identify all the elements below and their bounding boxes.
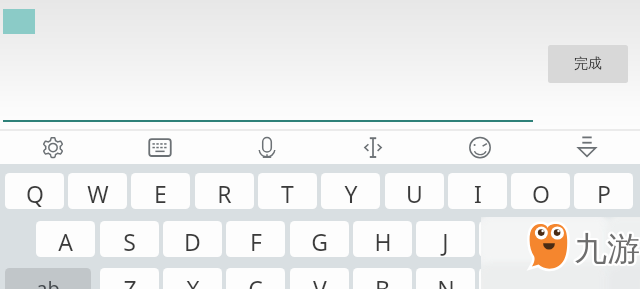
- button[interactable]: Keyboard layout: [134, 129, 186, 164]
- staticText: H: [374, 226, 392, 257]
- button[interactable]: J: [416, 221, 475, 257]
- staticText: 九游: [575, 229, 640, 271]
- button[interactable]: Emoji: [454, 129, 506, 164]
- button[interactable]: E: [131, 173, 190, 209]
- staticText: P: [597, 178, 611, 209]
- button[interactable]: L: [543, 221, 602, 257]
- staticText: O: [532, 178, 550, 209]
- button[interactable]: Move cursor: [347, 129, 399, 164]
- staticText: J: [442, 226, 449, 257]
- button[interactable]: Text input field: [3, 4, 533, 123]
- staticText: D: [184, 226, 201, 257]
- staticText: B: [375, 273, 390, 289]
- staticText: 九游: [575, 228, 640, 270]
- staticText: ab: [36, 275, 60, 289]
- staticText: L: [566, 226, 579, 257]
- button[interactable]: A: [36, 221, 95, 257]
- staticText: 九游: [572, 229, 638, 271]
- staticText: V: [313, 273, 327, 289]
- button[interactable]: ab: [5, 268, 91, 289]
- staticText: Y: [344, 178, 358, 209]
- button[interactable]: 完成: [548, 45, 628, 83]
- button[interactable]: M: [479, 268, 538, 289]
- button[interactable]: Voice input: [241, 129, 293, 164]
- staticText: N: [437, 273, 455, 289]
- staticText: 九游: [576, 227, 640, 269]
- button[interactable]: P: [574, 173, 633, 209]
- button[interactable]: F: [226, 221, 285, 257]
- staticText: X: [186, 273, 200, 289]
- staticText: 九游: [574, 228, 640, 270]
- button[interactable]: Settings: [27, 129, 79, 164]
- staticText: 九游: [575, 227, 640, 269]
- staticText: R: [217, 178, 232, 209]
- button[interactable]: T: [258, 173, 317, 209]
- staticText: 九游: [572, 227, 638, 269]
- staticText: I: [474, 178, 482, 209]
- staticText: 九游: [574, 226, 640, 268]
- staticText: 九游: [576, 228, 640, 270]
- staticText: E: [154, 178, 167, 209]
- staticText: 九游: [573, 227, 639, 269]
- staticText: 九游: [573, 228, 639, 270]
- staticText: 九游: [574, 228, 640, 270]
- staticText: 九游: [575, 226, 640, 268]
- button[interactable]: Q: [5, 173, 64, 209]
- button[interactable]: S: [100, 221, 159, 257]
- button[interactable]: Z: [100, 268, 159, 289]
- staticText: 九游: [574, 229, 640, 271]
- staticText: 九游: [573, 229, 639, 271]
- staticText: 完成: [574, 55, 602, 73]
- staticText: Z: [123, 273, 137, 289]
- staticText: U: [406, 178, 423, 209]
- staticText: W: [87, 178, 109, 209]
- button[interactable]: N: [416, 268, 475, 289]
- button[interactable]: K: [479, 221, 538, 257]
- button[interactable]: G: [290, 221, 349, 257]
- button[interactable]: W: [68, 173, 127, 209]
- button[interactable]: B: [353, 268, 412, 289]
- staticText: 九游: [574, 227, 640, 269]
- staticText: 九游: [573, 226, 639, 268]
- button[interactable]: U: [385, 173, 444, 209]
- button[interactable]: Y: [321, 173, 380, 209]
- staticText: Q: [26, 178, 44, 209]
- staticText: G: [311, 226, 328, 257]
- staticText: C: [248, 273, 263, 289]
- button[interactable]: V: [290, 268, 349, 289]
- staticText: T: [281, 178, 294, 209]
- staticText: 九游: [574, 230, 640, 272]
- button[interactable]: C: [226, 268, 285, 289]
- button[interactable]: O: [511, 173, 570, 209]
- staticText: 九游: [576, 229, 640, 271]
- button[interactable]: X: [163, 268, 222, 289]
- button[interactable]: R: [195, 173, 254, 209]
- staticText: 九游: [575, 230, 640, 272]
- button[interactable]: D: [163, 221, 222, 257]
- staticText: A: [58, 226, 73, 257]
- button[interactable]: Hide keyboard: [561, 129, 613, 164]
- staticText: 九游: [572, 228, 638, 270]
- staticText: S: [123, 226, 136, 257]
- staticText: F: [250, 226, 262, 257]
- staticText: 九游: [573, 230, 639, 272]
- button[interactable]: I: [448, 173, 507, 209]
- button[interactable]: H: [353, 221, 412, 257]
